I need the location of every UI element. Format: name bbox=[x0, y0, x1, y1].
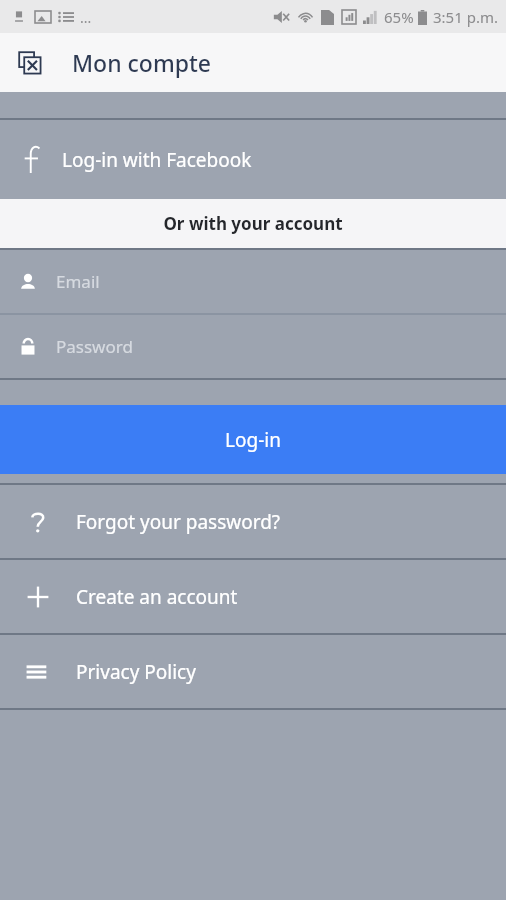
staticText: Forgot your password? bbox=[76, 509, 281, 535]
staticText: ... bbox=[80, 8, 92, 27]
staticText: 3:51 p.m. bbox=[433, 7, 498, 27]
button[interactable]: Email bbox=[0, 250, 506, 313]
staticText: Log-in bbox=[225, 427, 281, 453]
button[interactable]: Create an account bbox=[0, 560, 506, 633]
button[interactable]: Log-in bbox=[0, 405, 506, 474]
button[interactable]: Log-in with Facebook bbox=[0, 120, 506, 199]
button[interactable]: Password bbox=[0, 315, 506, 378]
button[interactable]: Close bbox=[8, 41, 52, 85]
staticText: Email bbox=[56, 270, 100, 293]
staticText: Create an account bbox=[76, 584, 238, 610]
staticText: Privacy Policy bbox=[76, 659, 196, 685]
button[interactable]: Forgot your password? bbox=[0, 485, 506, 558]
staticText: Or with your account bbox=[163, 212, 343, 235]
staticText: Log-in with Facebook bbox=[62, 147, 252, 173]
staticText: Mon compte bbox=[72, 47, 211, 78]
staticText: Password bbox=[56, 335, 133, 358]
button[interactable]: Privacy Policy bbox=[0, 635, 506, 708]
staticText: 65% bbox=[384, 7, 414, 27]
